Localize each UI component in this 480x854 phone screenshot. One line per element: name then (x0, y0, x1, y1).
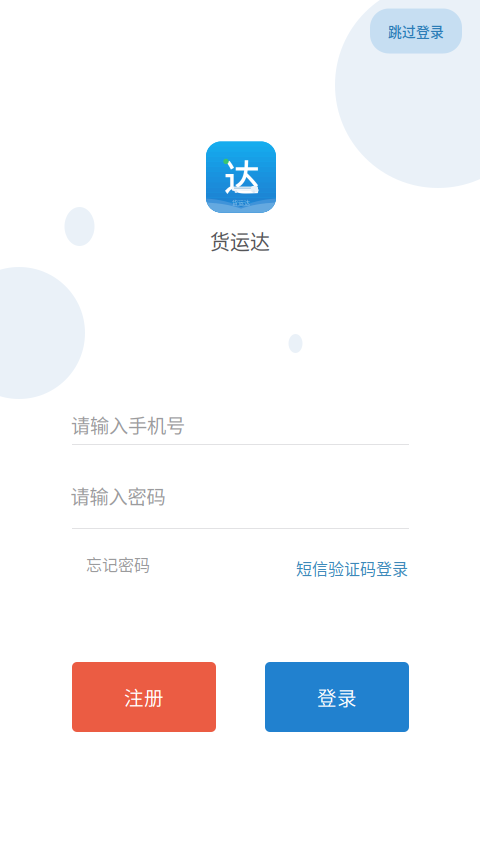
staticText: 登录 (317, 683, 357, 711)
staticText: 忘记密码 (86, 552, 150, 576)
button[interactable]: 短信验证码登录 (286, 548, 418, 588)
staticText: 短信验证码登录 (296, 556, 408, 580)
staticText: 跳过登录 (388, 21, 444, 41)
staticText: 注册 (124, 683, 164, 711)
button[interactable]: 注册 (72, 662, 216, 732)
staticText: 货运达 (210, 227, 270, 255)
button[interactable]: 登录 (265, 662, 409, 732)
staticText: 请输入密码 (70, 482, 165, 510)
staticText: 达 (224, 149, 260, 201)
button[interactable]: 忘记密码 (76, 544, 160, 584)
staticText: 货运达 (232, 198, 250, 207)
staticText: 请输入手机号 (71, 411, 185, 439)
button[interactable]: 跳过登录 (370, 8, 462, 53)
